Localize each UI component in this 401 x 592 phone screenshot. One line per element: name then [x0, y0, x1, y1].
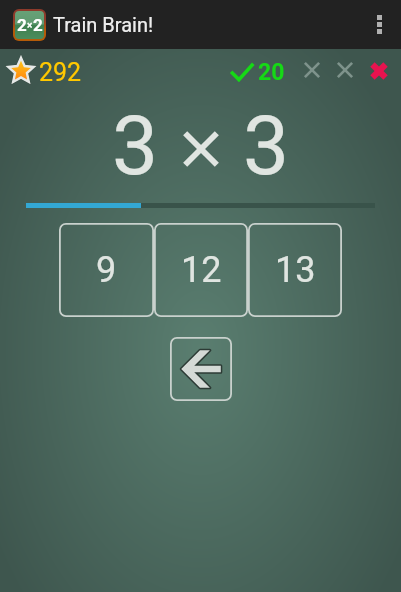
staticText: 3 [112, 98, 159, 194]
button[interactable]: 9 [59, 223, 154, 317]
button[interactable]: 12 [154, 223, 248, 317]
staticText: 2 [33, 15, 43, 35]
staticText: 20 [258, 59, 285, 86]
staticText: × [27, 20, 33, 32]
staticText: 3 [243, 98, 290, 194]
staticText: Train Brain! [53, 13, 154, 36]
staticText: 12 [181, 249, 222, 291]
button[interactable]: Back [170, 337, 232, 401]
button[interactable]: More options [357, 0, 401, 49]
button[interactable]: 13 [248, 223, 342, 317]
staticText: 2 [17, 15, 27, 35]
staticText: 292 [39, 58, 82, 87]
staticText: 13 [275, 249, 316, 291]
staticText: 9 [96, 249, 117, 291]
